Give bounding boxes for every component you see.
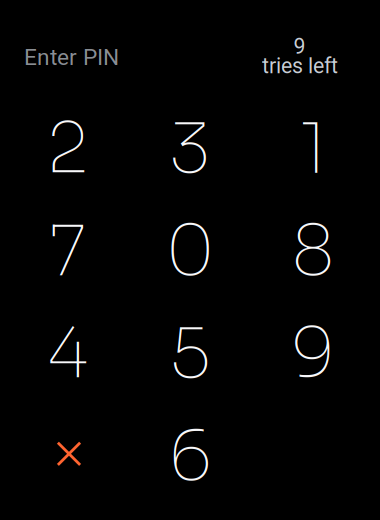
staticText: 6 bbox=[168, 412, 213, 500]
staticText: 5 bbox=[169, 310, 211, 397]
staticText: tries left bbox=[262, 53, 338, 78]
button[interactable]: 8 bbox=[252, 200, 375, 302]
button[interactable]: Delete bbox=[6, 405, 129, 507]
staticText: 7 bbox=[48, 207, 86, 295]
staticText: 0 bbox=[165, 207, 215, 295]
staticText: 2 bbox=[46, 105, 88, 192]
staticText: 9 bbox=[291, 310, 336, 397]
button[interactable]: 2 bbox=[6, 97, 129, 200]
button[interactable]: 1 bbox=[252, 97, 375, 200]
staticText: 4 bbox=[46, 310, 88, 397]
staticText: 8 bbox=[292, 207, 335, 295]
button[interactable]: 0 bbox=[129, 200, 252, 302]
button[interactable]: 4 bbox=[6, 302, 129, 405]
staticText: 1 bbox=[299, 105, 327, 192]
button[interactable]: 6 bbox=[129, 405, 252, 507]
staticText: Enter PIN bbox=[24, 44, 119, 71]
button[interactable]: 5 bbox=[129, 302, 252, 405]
staticText: 9 bbox=[293, 34, 305, 59]
staticText: 3 bbox=[169, 105, 211, 192]
button[interactable]: 7 bbox=[6, 200, 129, 302]
button[interactable]: 3 bbox=[129, 97, 252, 200]
button[interactable]: 9 bbox=[252, 302, 375, 405]
